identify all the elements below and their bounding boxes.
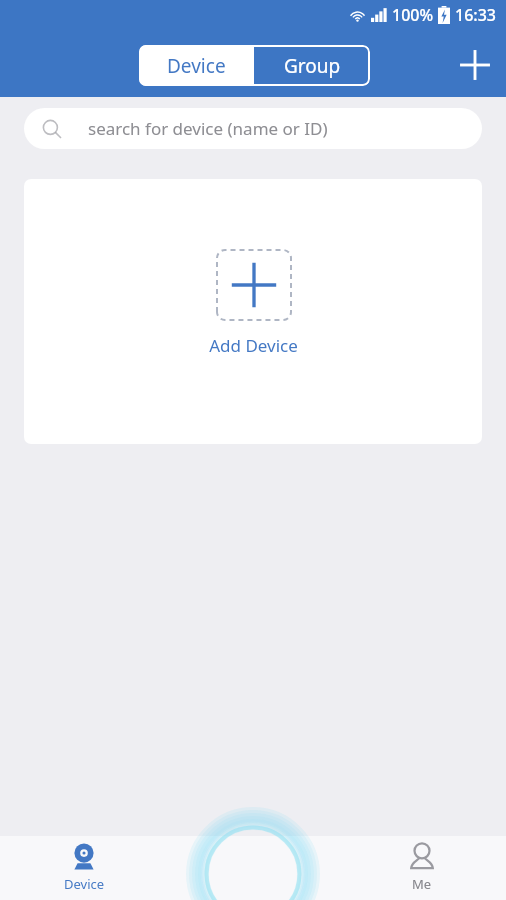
button[interactable]: Group (254, 45, 370, 86)
staticText: Add Device (209, 334, 298, 357)
staticText: Device (167, 53, 226, 79)
button[interactable]: search for device (name or ID) (24, 108, 482, 149)
staticText: 16:33 (455, 4, 496, 26)
button[interactable]: Me (374, 839, 470, 897)
button[interactable]: Device (36, 839, 132, 897)
staticText: search for device (name or ID) (88, 117, 328, 140)
button[interactable]: Device (139, 45, 254, 86)
staticText: Group (284, 53, 341, 79)
staticText: 100% (392, 4, 434, 26)
staticText: Device (64, 875, 105, 893)
button[interactable]: Add Device (24, 179, 482, 444)
staticText: Me (412, 875, 432, 893)
button[interactable]: Add (448, 38, 502, 92)
